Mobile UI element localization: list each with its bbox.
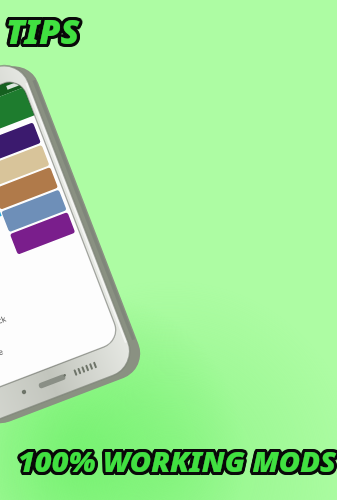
button[interactable]: HappyMod tips promo screen — [0, 0, 337, 500]
